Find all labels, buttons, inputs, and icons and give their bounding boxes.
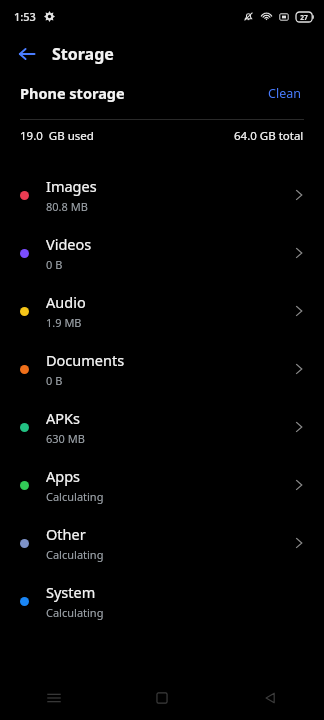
- button[interactable]: Other: [0, 514, 324, 572]
- button[interactable]: Back: [10, 37, 44, 71]
- button[interactable]: Recent apps: [0, 676, 108, 720]
- staticText: Documents: [46, 350, 125, 370]
- button[interactable]: Audio: [0, 282, 324, 340]
- button[interactable]: Home: [108, 676, 216, 720]
- staticText: 80.8 MB: [46, 199, 88, 214]
- button[interactable]: Images: [0, 166, 324, 224]
- staticText: 1:53: [14, 9, 36, 24]
- staticText: Videos: [46, 234, 92, 254]
- staticText: 19.0 GB used: [20, 128, 94, 144]
- staticText: Apps: [46, 466, 81, 486]
- staticText: Audio: [46, 292, 86, 312]
- staticText: 630 MB: [46, 431, 85, 446]
- staticText: Other: [46, 524, 86, 544]
- button[interactable]: Documents: [0, 340, 324, 398]
- button[interactable]: Clean: [265, 83, 304, 104]
- staticText: Calculating: [46, 489, 104, 504]
- staticText: APKs: [46, 408, 80, 428]
- staticText: Images: [46, 176, 97, 196]
- staticText: Calculating: [46, 547, 104, 562]
- staticText: 27: [300, 13, 308, 22]
- staticText: 0 B: [46, 373, 63, 388]
- button[interactable]: Videos: [0, 224, 324, 282]
- staticText: 0 B: [46, 257, 63, 272]
- button[interactable]: System: [0, 572, 324, 630]
- button[interactable]: Back: [216, 676, 324, 720]
- staticText: System: [46, 582, 96, 602]
- staticText: 64.0 GB total: [234, 128, 304, 144]
- staticText: Phone storage: [20, 83, 125, 103]
- staticText: Clean: [268, 85, 301, 102]
- staticText: 1.9 MB: [46, 315, 82, 330]
- button[interactable]: APKs: [0, 398, 324, 456]
- button[interactable]: Apps: [0, 456, 324, 514]
- staticText: Calculating: [46, 605, 104, 620]
- staticText: Storage: [52, 43, 114, 65]
